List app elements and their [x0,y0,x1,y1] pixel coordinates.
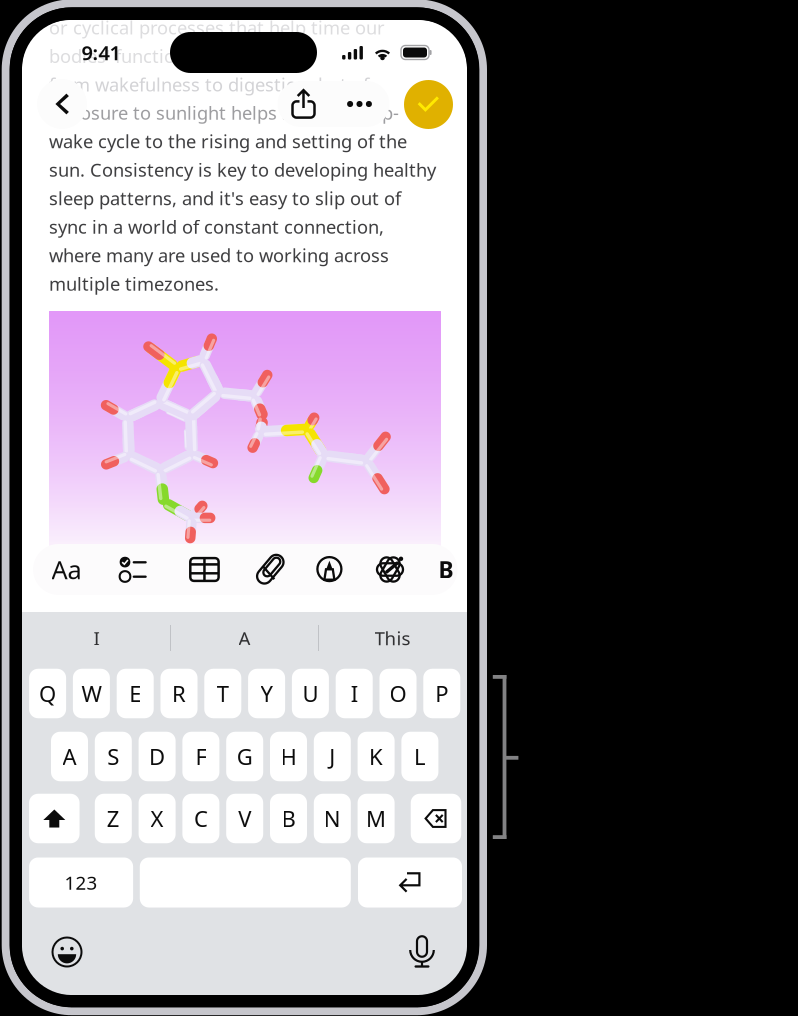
button[interactable]: X [139,794,176,843]
staticText: sun. Consistency is key to developing he… [49,157,436,182]
button[interactable]: Checklist [105,544,161,595]
button[interactable]: Format [38,544,94,595]
button[interactable]: D [139,732,176,781]
button[interactable]: U [292,669,329,718]
button[interactable]: V [226,794,263,843]
button[interactable]: Return [358,857,462,907]
staticText: bodies' functions — everything [49,43,314,68]
staticText: B [438,554,453,585]
button[interactable]: N [314,794,351,843]
staticText: sleep patterns, and it's easy to slip ou… [49,186,401,211]
staticText: B [281,803,295,833]
button[interactable]: A [171,618,318,658]
button[interactable]: Done [404,80,453,129]
button[interactable]: Markup [301,544,357,595]
staticText: from wakefulness to digestion, but of [49,72,369,97]
button[interactable]: F [182,732,219,781]
staticText: P [435,678,448,708]
staticText: Y [261,678,273,708]
button[interactable]: W [73,669,110,718]
button[interactable]: J [314,732,351,781]
button[interactable]: Bold [433,544,459,595]
staticText: Z [107,803,120,833]
staticText: N [324,803,341,833]
button[interactable]: Delete [411,794,461,843]
button[interactable]: Dictate [407,935,437,969]
staticText: Q [39,678,56,708]
staticText: H [280,741,296,771]
button[interactable]: Q [29,669,66,718]
button[interactable]: Attach [242,544,298,595]
button[interactable]: O [379,669,416,718]
staticText: S [107,741,119,771]
staticText: sync in a world of constant connection, [49,214,384,239]
staticText: I [93,625,99,651]
button[interactable]: S [95,732,132,781]
staticText: W [81,678,101,708]
staticText: A [238,625,250,651]
staticText: where many are used to working across [49,243,389,268]
button[interactable]: P [423,669,460,718]
staticText: D [149,741,165,771]
staticText: Aa [51,552,81,587]
staticText: A [62,741,76,771]
button[interactable]: Shift [29,794,79,843]
button[interactable]: H [270,732,307,781]
button[interactable]: I [336,669,373,718]
button[interactable]: M [358,794,395,843]
staticText: K [369,741,383,771]
staticText: 9:41 [81,39,120,66]
button[interactable]: Emoji [50,935,84,969]
staticText: This [374,625,410,651]
staticText: M [366,803,386,833]
button[interactable]: Share [277,81,329,127]
button[interactable]: Writing Tools [363,544,419,595]
staticText: I [351,678,358,708]
staticText: U [302,678,318,708]
button[interactable]: K [358,732,395,781]
staticText: R [172,678,186,708]
button[interactable]: C [182,794,219,843]
staticText: L [414,741,426,771]
button[interactable]: This [319,618,466,658]
staticText: 123 [65,870,98,895]
staticText: G [237,741,253,771]
button[interactable]: Back [37,79,87,129]
staticText: T [217,678,229,708]
button[interactable]: Table [176,544,232,595]
staticText: C [194,803,208,833]
button[interactable]: T [204,669,241,718]
button[interactable]: Z [95,794,132,843]
staticText: exposure to sunlight helps set our sleep… [49,100,399,125]
button[interactable]: I [23,618,170,658]
staticText: or cyclical processes that help time our [49,15,385,40]
button[interactable]: E [117,669,154,718]
staticText: wake cycle to the rising and setting of … [49,129,407,154]
button[interactable]: B [270,794,307,843]
staticText: multiple timezones. [49,271,219,296]
staticText: X [151,803,164,833]
button[interactable]: G [226,732,263,781]
button[interactable]: R [160,669,197,718]
staticText: V [238,803,251,833]
staticText: E [129,678,141,708]
button[interactable]: Space [140,857,351,907]
button[interactable]: L [401,732,438,781]
staticText: J [329,741,335,771]
button[interactable]: More [329,81,389,127]
staticText: F [195,741,206,771]
staticText: O [389,678,406,708]
button[interactable]: Y [248,669,285,718]
button[interactable]: Numbers [29,857,133,907]
button[interactable]: A [51,732,88,781]
